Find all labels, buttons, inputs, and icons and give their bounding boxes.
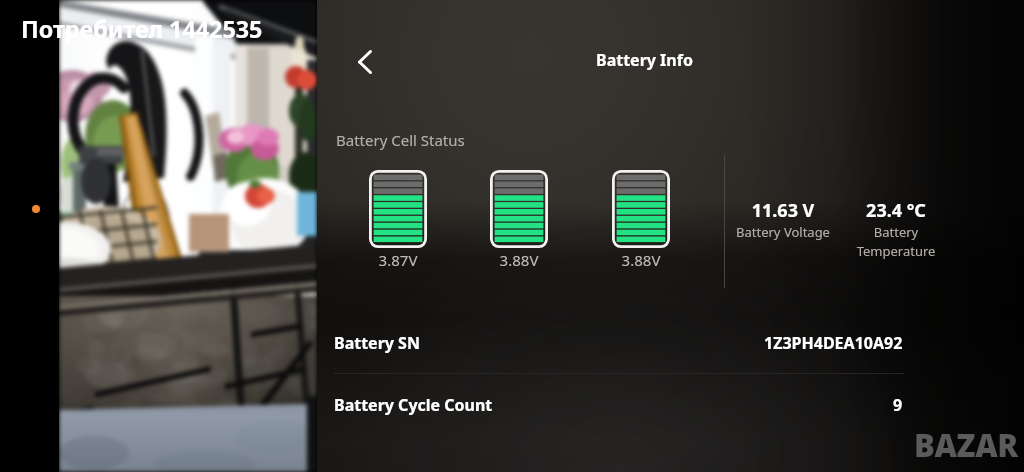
staticText: 9	[893, 394, 903, 416]
staticText: Battery Cycle Count	[334, 394, 493, 416]
staticText: 3.87V	[348, 250, 448, 270]
staticText: Battery Info	[596, 49, 693, 71]
staticText: 3.88V	[469, 250, 569, 270]
staticText: BAZAR	[914, 424, 1018, 466]
staticText: Потребител 1442535	[21, 13, 263, 45]
staticText: 11.63 V	[713, 198, 853, 223]
button[interactable]: Battery SN	[317, 312, 1024, 374]
staticText: 3.88V	[591, 250, 691, 270]
staticText: Battery Temperature	[831, 223, 961, 260]
staticText: Battery SN	[334, 332, 420, 354]
staticText: Battery Cell Status	[336, 130, 465, 150]
button[interactable]: Battery Cycle Count	[317, 374, 1024, 436]
staticText: 23.4 °C	[831, 198, 961, 223]
button[interactable]: Back	[335, 36, 387, 88]
staticText: Battery Voltage	[713, 223, 853, 241]
staticText: 1Z3PH4DEA10A92	[764, 332, 903, 354]
